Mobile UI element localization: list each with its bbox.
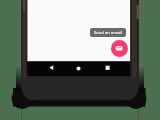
button[interactable]: [71, 61, 86, 76]
button[interactable]: Send an email: [90, 28, 126, 37]
button[interactable]: [44, 61, 59, 76]
button[interactable]: [100, 61, 115, 76]
staticText: Send an email: [94, 30, 122, 36]
button[interactable]: [111, 40, 128, 57]
